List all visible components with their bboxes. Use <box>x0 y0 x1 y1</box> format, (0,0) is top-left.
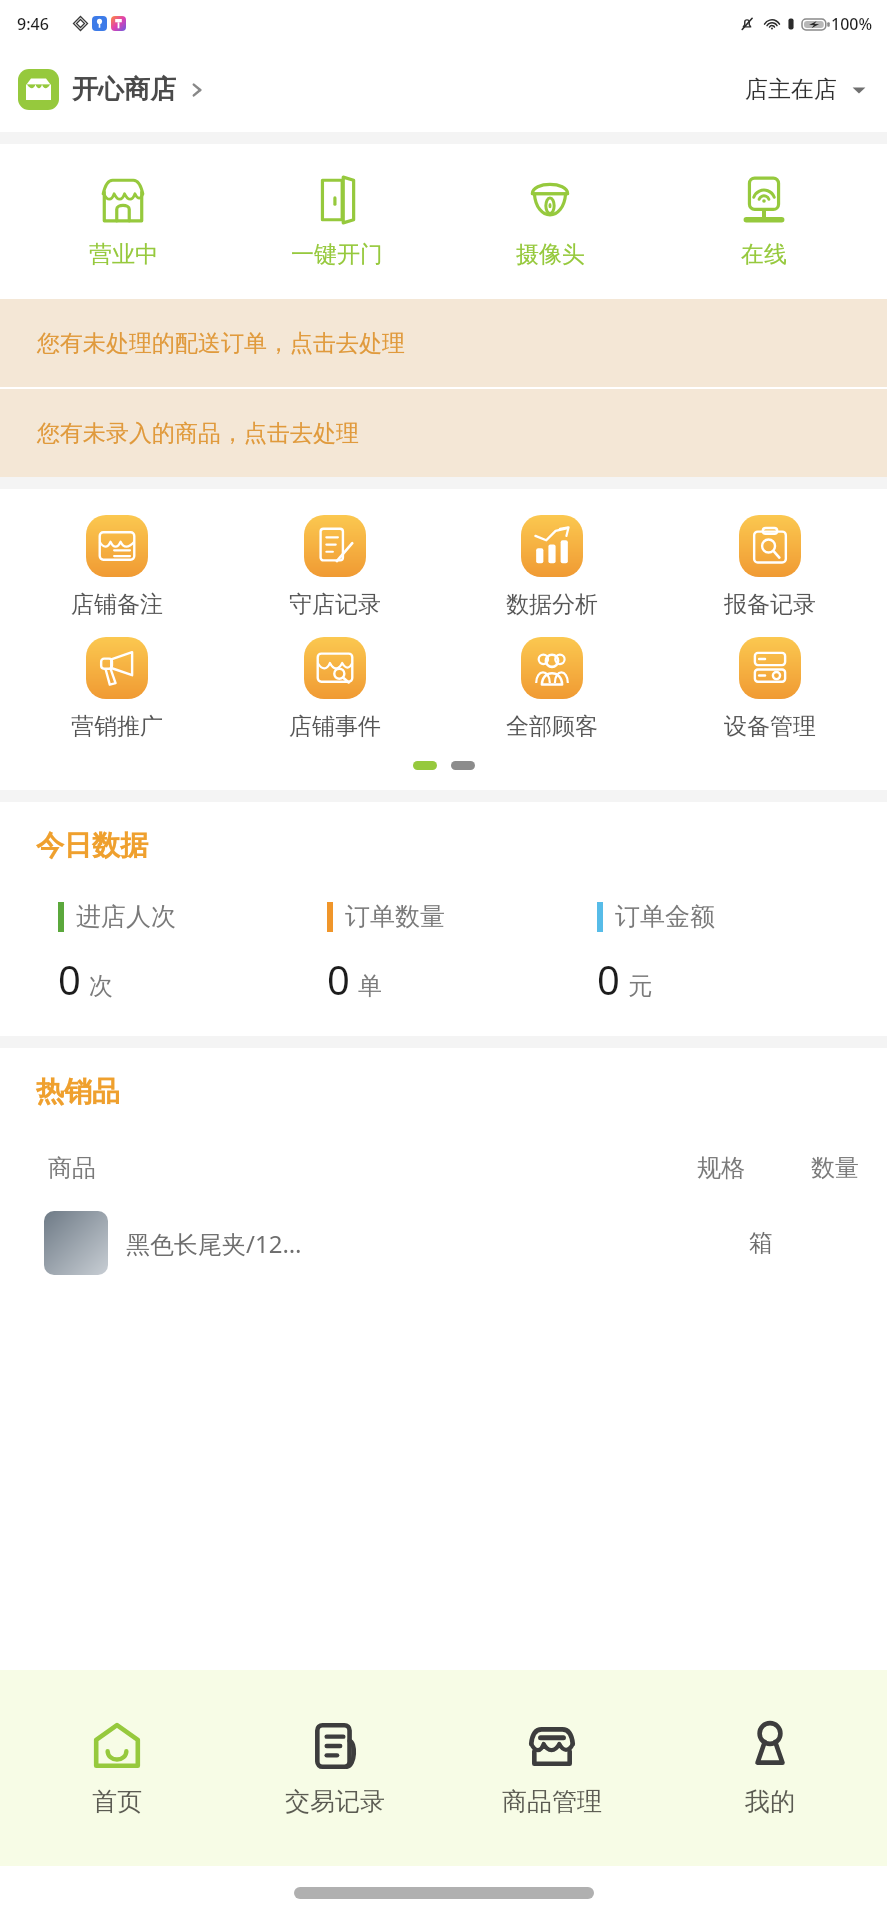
staticText: 守店记录 <box>289 590 381 619</box>
button[interactable]: 我的 <box>670 1712 870 1825</box>
staticText: 规格 <box>697 1153 745 1183</box>
staticText: 商品 <box>48 1153 96 1183</box>
button[interactable]: 店主在店 <box>745 75 867 104</box>
staticText: 您有未录入的商品，点击去处理 <box>37 419 359 448</box>
button[interactable]: 您有未处理的配送订单，点击去处理 <box>0 299 887 387</box>
staticText: 营销推广 <box>71 712 163 741</box>
button[interactable]: 店铺备注 <box>17 511 217 623</box>
staticText: 订单金额 <box>615 901 715 932</box>
staticText: 店铺备注 <box>71 590 163 619</box>
button[interactable]: 首页 <box>17 1712 217 1825</box>
staticText: 数量 <box>811 1153 859 1183</box>
staticText: 订单数量 <box>345 901 445 932</box>
staticText: 100% <box>831 13 873 35</box>
staticText: 摄像头 <box>516 240 585 269</box>
button[interactable]: 设备管理 <box>670 633 870 745</box>
staticText: 热销品 <box>36 1074 120 1109</box>
staticText: 开心商店 <box>72 73 176 106</box>
staticText: 0 <box>597 952 620 1006</box>
staticText: 店主在店 <box>745 75 837 104</box>
button[interactable]: 黑色长尾夹/12… <box>44 1211 859 1275</box>
button[interactable]: 全部顾客 <box>452 633 652 745</box>
button[interactable]: 店铺事件 <box>235 633 435 745</box>
staticText: 设备管理 <box>724 712 816 741</box>
staticText: 在线 <box>741 240 787 269</box>
staticText: 进店人次 <box>76 901 176 932</box>
staticText: 黑色长尾夹/12… <box>126 1227 302 1260</box>
button[interactable]: 商品管理 <box>452 1712 652 1825</box>
staticText: 营业中 <box>89 240 158 269</box>
button[interactable]: 开心商店 <box>18 69 206 110</box>
button[interactable]: 一键开门 <box>247 168 427 275</box>
button[interactable]: 报备记录 <box>670 511 870 623</box>
staticText: 报备记录 <box>724 590 816 619</box>
button[interactable]: 守店记录 <box>235 511 435 623</box>
button[interactable]: 交易记录 <box>235 1712 435 1825</box>
staticText: 一键开门 <box>291 240 383 269</box>
staticText: 交易记录 <box>285 1786 385 1817</box>
button[interactable]: 营销推广 <box>17 633 217 745</box>
staticText: 箱 <box>749 1228 773 1258</box>
staticText: 次 <box>89 971 113 1001</box>
button[interactable]: 在线 <box>674 168 854 275</box>
staticText: 0 <box>58 952 81 1006</box>
button[interactable]: 营业中 <box>33 168 213 275</box>
staticText: 9:46 <box>17 13 49 35</box>
staticText: 您有未处理的配送订单，点击去处理 <box>37 329 405 358</box>
staticText: 今日数据 <box>36 828 148 863</box>
button[interactable]: 您有未录入的商品，点击去处理 <box>0 389 887 477</box>
staticText: 首页 <box>92 1786 142 1817</box>
staticText: 元 <box>628 971 652 1001</box>
staticText: 全部顾客 <box>506 712 598 741</box>
staticText: 商品管理 <box>502 1786 602 1817</box>
staticText: 我的 <box>745 1786 795 1817</box>
staticText: 店铺事件 <box>289 712 381 741</box>
staticText: 0 <box>327 952 350 1006</box>
staticText: 数据分析 <box>506 590 598 619</box>
button[interactable]: 数据分析 <box>452 511 652 623</box>
button[interactable]: 摄像头 <box>460 168 640 275</box>
staticText: 单 <box>358 971 382 1001</box>
